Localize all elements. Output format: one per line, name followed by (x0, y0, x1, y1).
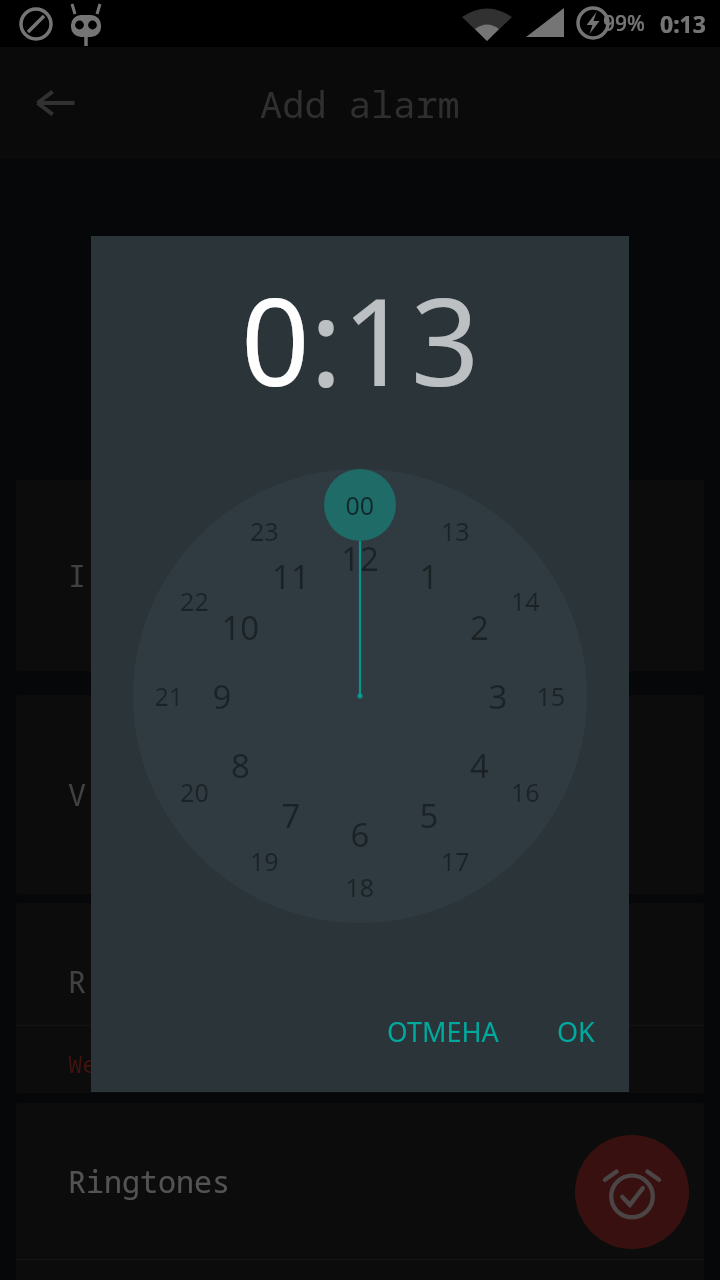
staticText: 99% (603, 9, 645, 38)
button[interactable] (133, 469, 587, 923)
staticText: 0:13 (660, 8, 706, 39)
button[interactable]: Back (26, 73, 86, 133)
button[interactable]: V (16, 695, 704, 894)
staticText: Ringtones (68, 1161, 230, 1202)
staticText: We (68, 1047, 97, 1080)
staticText: R (68, 961, 86, 1002)
staticText: OK (557, 1013, 595, 1050)
staticText: :13 (310, 258, 480, 421)
staticText: 0 (241, 258, 310, 421)
button[interactable]: Ringtones (16, 1103, 704, 1280)
button[interactable]: R (16, 903, 704, 1093)
staticText: Add alarm (260, 78, 460, 128)
staticText: V (68, 774, 86, 815)
button[interactable]: OK (543, 1003, 609, 1060)
button[interactable]: ОТМЕНА (373, 1003, 513, 1060)
button[interactable]: Save alarm (575, 1135, 689, 1249)
button[interactable]: I (16, 480, 704, 671)
staticText: I (68, 555, 86, 596)
staticText: ОТМЕНА (387, 1013, 499, 1050)
